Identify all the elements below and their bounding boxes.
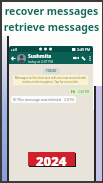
staticText: This message was deleted: [17, 97, 62, 102]
staticText: TODAY: [46, 69, 57, 73]
button[interactable]: Voice call: [80, 55, 87, 62]
button[interactable]: Back: [10, 55, 17, 62]
staticText: 2:38 PM: [78, 90, 90, 94]
staticText: 2:49 PM: [77, 47, 91, 52]
staticText: retrieve messages: [0, 20, 103, 34]
button[interactable]: More options: [87, 56, 92, 61]
staticText: 2024: [36, 152, 67, 166]
staticText: Messages to this chat and calls are now …: [14, 76, 87, 84]
staticText: Hi: [71, 89, 76, 94]
staticText: 2:39 PM: [64, 98, 74, 102]
staticText: Sushmita: [28, 53, 52, 60]
staticText: recover messages: [0, 4, 103, 18]
button[interactable]: 2024: [28, 152, 75, 166]
button[interactable]: Video call: [72, 54, 80, 62]
staticText: today at 2:37 PM: [28, 60, 54, 64]
